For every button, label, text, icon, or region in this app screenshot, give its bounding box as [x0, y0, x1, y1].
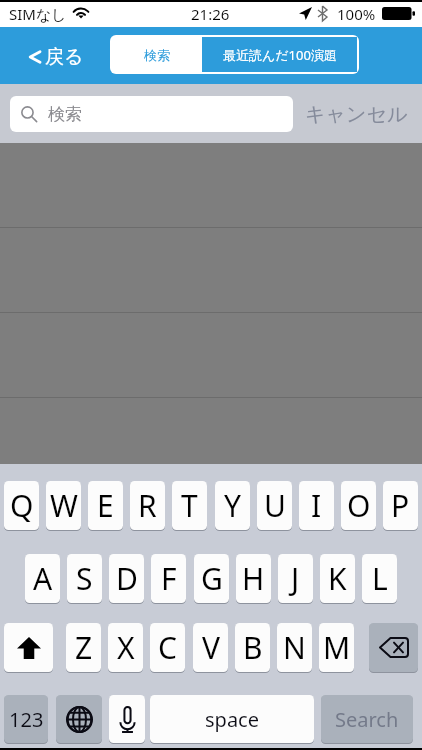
staticText: S — [76, 558, 93, 599]
button[interactable]: 123 — [4, 695, 48, 743]
button[interactable]: J — [278, 554, 313, 603]
button[interactable]: 戻る — [22, 40, 91, 74]
button[interactable]: T — [172, 481, 207, 530]
staticText: 123 — [9, 706, 44, 733]
staticText: M — [323, 627, 351, 668]
button[interactable]: B — [235, 623, 270, 672]
button[interactable]: 検索 — [10, 96, 293, 132]
button[interactable]: Z — [66, 623, 101, 672]
staticText: E — [97, 485, 114, 526]
button[interactable]: N — [277, 623, 312, 672]
button[interactable]: Q — [4, 481, 39, 530]
button[interactable]: C — [150, 623, 185, 672]
button[interactable]: P — [383, 481, 418, 530]
staticText: 最近読んだ100演題 — [223, 46, 337, 64]
button[interactable]: Y — [215, 481, 250, 530]
staticText: H — [242, 558, 265, 599]
staticText: N — [283, 627, 306, 668]
staticText: R — [138, 485, 157, 526]
button[interactable]: V — [193, 623, 228, 672]
staticText: D — [116, 558, 138, 599]
staticText: X — [117, 627, 135, 668]
button[interactable]: 検索 — [112, 37, 202, 72]
staticText: I — [311, 485, 322, 526]
button[interactable]: space — [150, 695, 314, 743]
staticText: Q — [10, 485, 34, 526]
staticText: SIMなし — [9, 4, 67, 24]
staticText: G — [201, 558, 223, 599]
button[interactable]: E — [88, 481, 123, 530]
button[interactable]: 最近読んだ100演題 — [202, 37, 357, 72]
staticText: U — [264, 485, 286, 526]
staticText: O — [347, 485, 371, 526]
staticText: 100% — [337, 4, 376, 24]
button[interactable]: F — [151, 554, 186, 603]
button[interactable]: Search — [321, 695, 413, 743]
staticText: B — [243, 627, 263, 668]
staticText: V — [202, 627, 220, 668]
button[interactable]: S — [67, 554, 102, 603]
button[interactable]: I — [299, 481, 334, 530]
staticText: K — [328, 558, 347, 599]
staticText: L — [372, 558, 388, 599]
staticText: space — [205, 706, 259, 733]
staticText: Z — [75, 627, 93, 668]
button[interactable]: Change keyboard — [56, 695, 102, 743]
staticText: F — [161, 558, 177, 599]
staticText: Search — [335, 706, 399, 733]
staticText: P — [391, 485, 410, 526]
button[interactable]: キャンセル — [299, 96, 414, 133]
button[interactable]: Shift — [4, 623, 53, 672]
staticText: J — [291, 558, 300, 599]
staticText: 戻る — [45, 45, 84, 69]
button[interactable]: A — [25, 554, 60, 603]
button[interactable]: O — [341, 481, 376, 530]
staticText: C — [158, 627, 177, 668]
staticText: Y — [224, 485, 241, 526]
button[interactable]: H — [236, 554, 271, 603]
button[interactable]: W — [46, 481, 81, 530]
button[interactable]: Backspace — [369, 623, 418, 672]
staticText: A — [33, 558, 53, 599]
button[interactable]: D — [109, 554, 144, 603]
button[interactable]: R — [130, 481, 165, 530]
staticText: 21:26 — [191, 4, 230, 24]
button[interactable]: M — [319, 623, 354, 672]
staticText: T — [181, 485, 198, 526]
button[interactable]: X — [108, 623, 143, 672]
staticText: キャンセル — [305, 102, 408, 127]
button[interactable]: U — [257, 481, 292, 530]
button[interactable]: G — [194, 554, 229, 603]
button[interactable]: Dictation — [109, 695, 145, 743]
button[interactable]: K — [320, 554, 355, 603]
button[interactable]: L — [362, 554, 397, 603]
staticText: 検索 — [48, 104, 82, 125]
staticText: W — [50, 485, 78, 526]
staticText: 検索 — [144, 47, 170, 63]
